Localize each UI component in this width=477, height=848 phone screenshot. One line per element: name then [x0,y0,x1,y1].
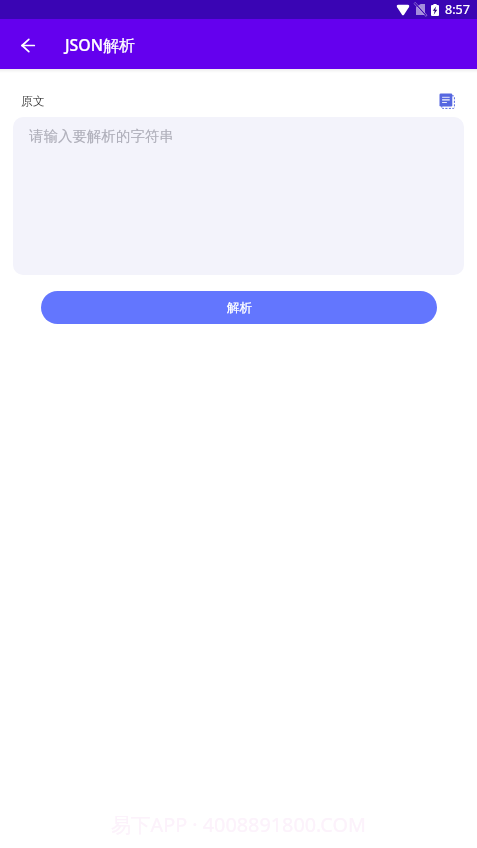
staticText: 易下APP · 4008891800.COM [111,811,366,838]
staticText: 解析 [227,300,252,316]
staticText: 原文 [21,94,45,109]
button[interactable]: 请输入要解析的字符串 [13,117,464,275]
button[interactable]: Paste [435,89,459,113]
staticText: 请输入要解析的字符串 [29,127,174,145]
button[interactable]: 解析 [41,291,437,324]
button[interactable]: Back [0,19,56,69]
staticText: 8:57 [445,1,470,18]
staticText: JSON解析 [65,34,135,56]
